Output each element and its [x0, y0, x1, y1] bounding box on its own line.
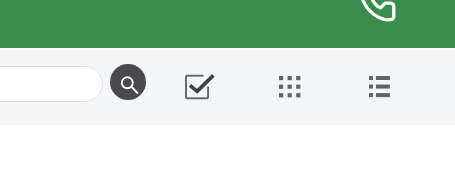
- button[interactable]: Call: [340, 0, 410, 30]
- button[interactable]: Select: [182, 71, 216, 105]
- button[interactable]: Search: [110, 64, 146, 100]
- button[interactable]: Search box: [0, 66, 103, 102]
- button[interactable]: Grid view: [274, 71, 306, 103]
- button[interactable]: List view: [364, 71, 396, 103]
